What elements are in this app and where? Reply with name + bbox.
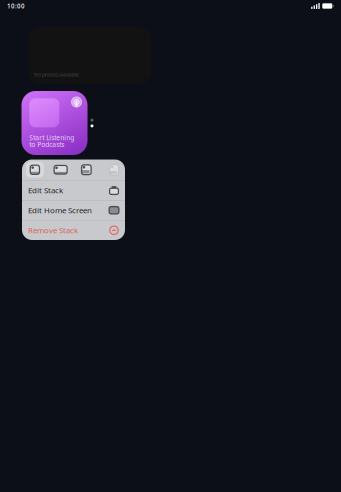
button[interactable]: Edit Home Screen	[22, 200, 125, 220]
staticText: Edit Home Screen	[28, 205, 92, 216]
staticText: No photos available	[34, 71, 79, 78]
button[interactable]: Remove Stack	[22, 220, 125, 240]
staticText: Remove Stack	[28, 225, 78, 236]
staticText: to Podcasts	[29, 140, 64, 149]
button[interactable]: Large widget	[73, 161, 99, 179]
button[interactable]: Extra large widget	[99, 161, 125, 179]
staticText: Edit Stack	[28, 185, 63, 196]
staticText: Start Listening	[29, 133, 74, 142]
button[interactable]: Medium widget	[48, 161, 74, 179]
button[interactable]: Start Listening	[21, 91, 87, 155]
button[interactable]: Small widget	[22, 161, 48, 179]
button[interactable]: Edit Stack	[22, 180, 125, 200]
staticText: 10:00	[7, 2, 25, 10]
